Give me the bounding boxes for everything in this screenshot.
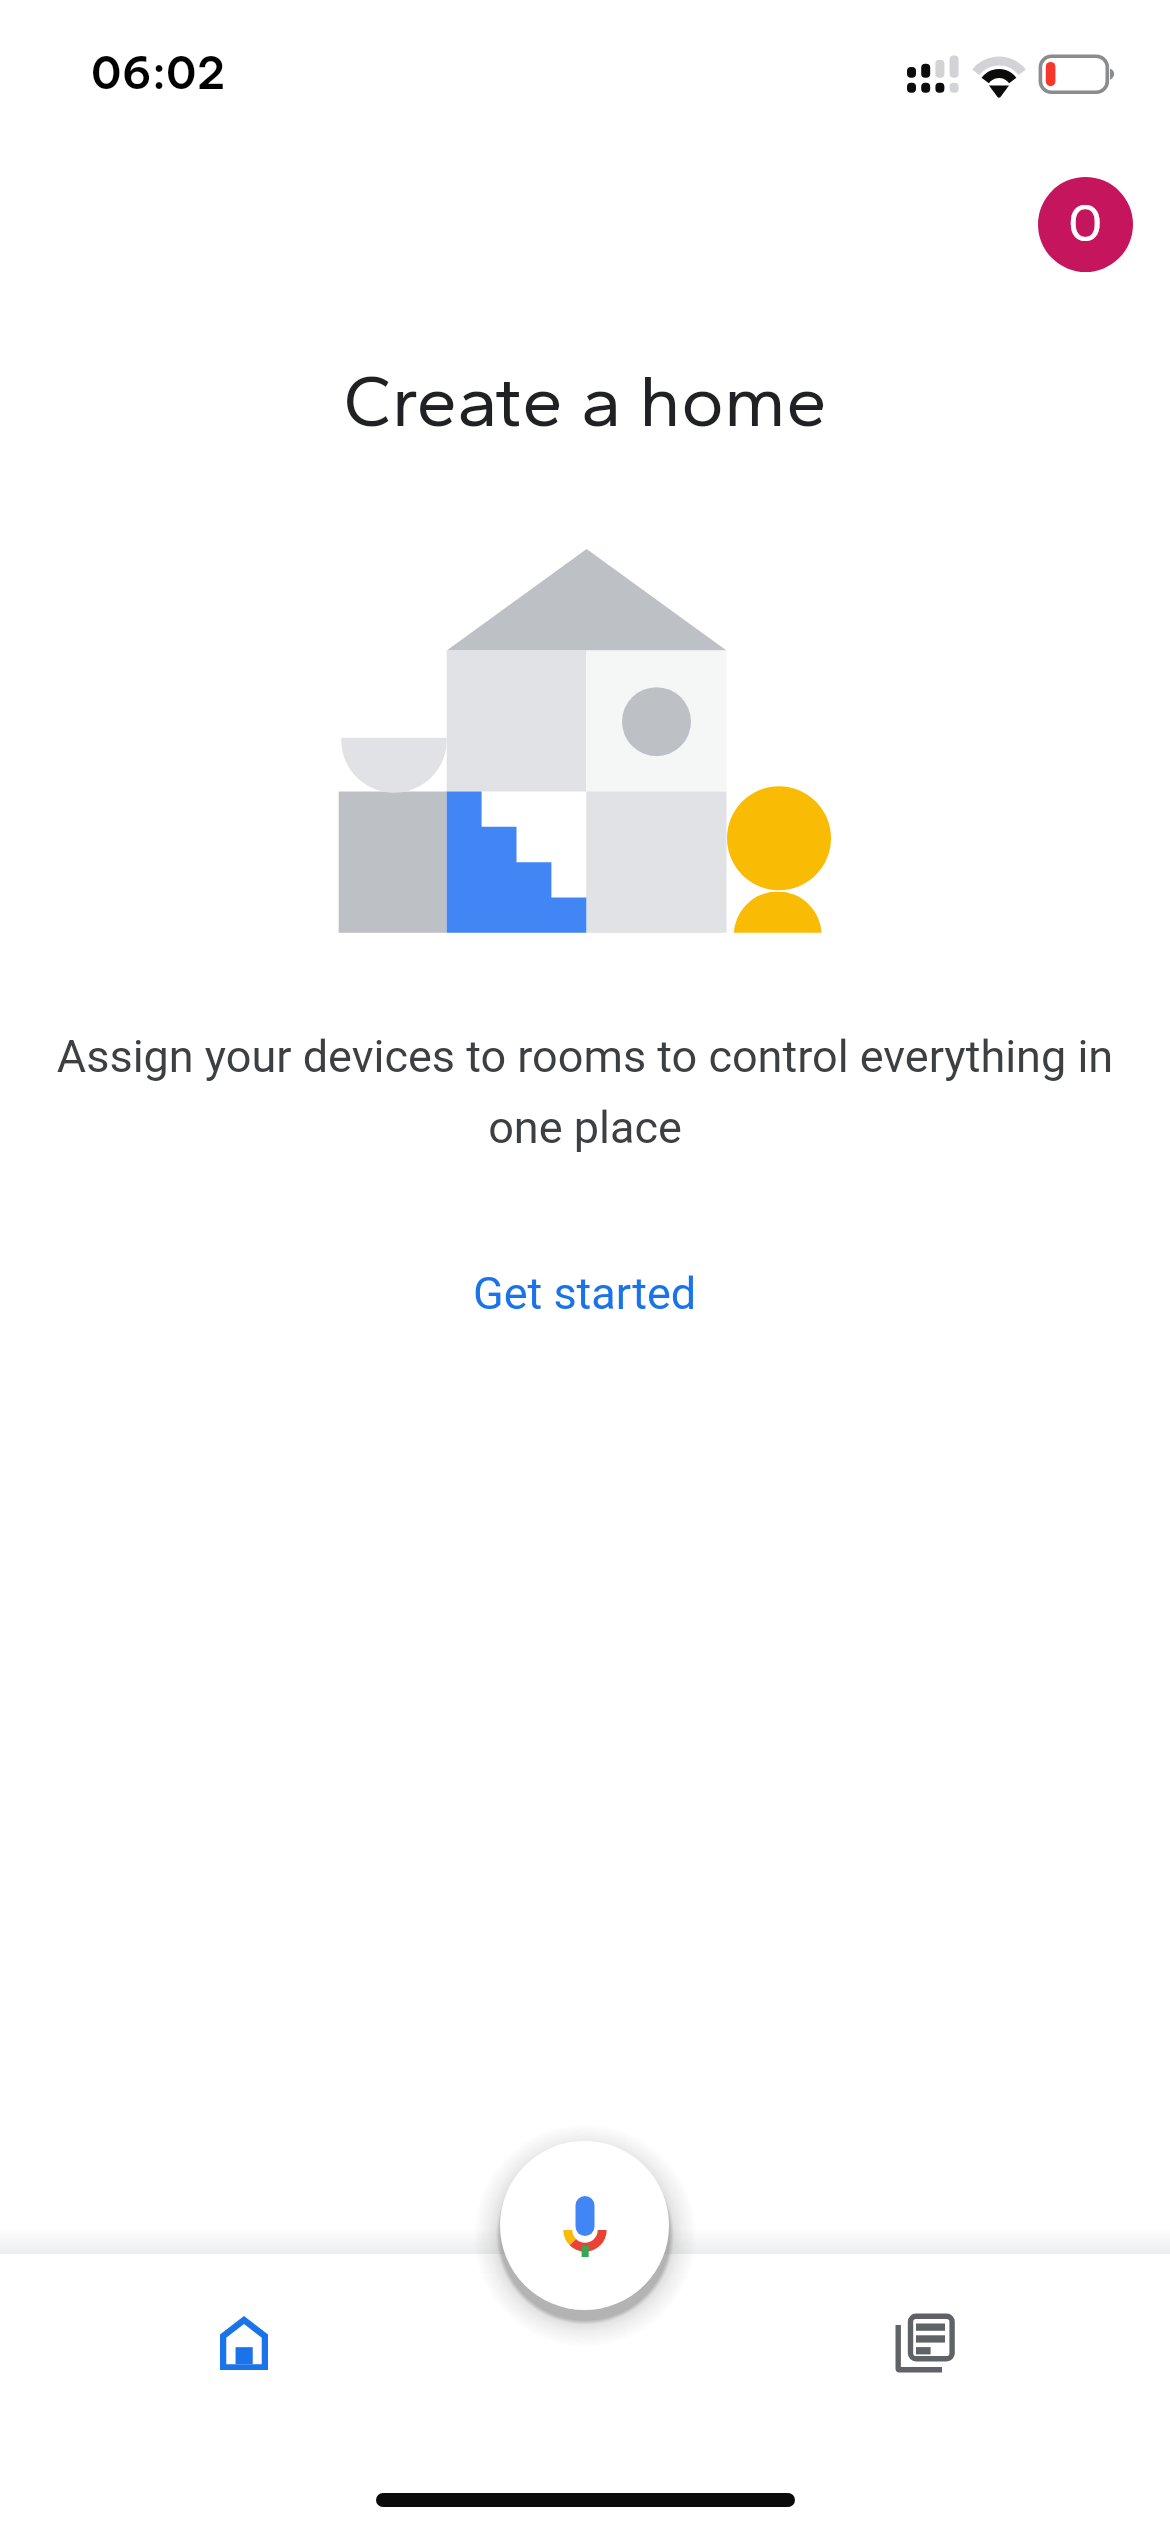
- button[interactable]: Get started: [433, 1245, 737, 1342]
- staticText: 06:02: [91, 45, 226, 101]
- staticText: O: [1068, 195, 1103, 254]
- staticText: Get started: [473, 1267, 697, 1320]
- staticText: Create a home: [343, 357, 827, 445]
- button[interactable]: Account: [1038, 177, 1133, 272]
- button[interactable]: Google Assistant: [500, 2141, 669, 2310]
- button[interactable]: Home: [174, 2273, 314, 2413]
- button[interactable]: Feed: [855, 2273, 995, 2413]
- staticText: Assign your devices to rooms to control …: [40, 1030, 1130, 1154]
